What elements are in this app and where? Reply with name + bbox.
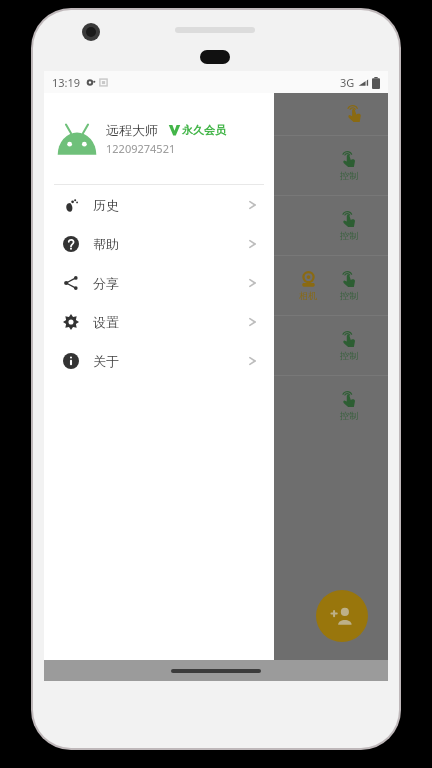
staticText: 历史 bbox=[93, 197, 119, 213]
staticText: 相机 bbox=[299, 290, 317, 301]
staticText: 远程大师 bbox=[106, 122, 158, 138]
button[interactable]: 添加设备 bbox=[316, 590, 368, 642]
button[interactable]: 帮助 bbox=[44, 224, 274, 263]
staticText: 设置 bbox=[93, 314, 119, 330]
button[interactable]: 分享 bbox=[44, 263, 274, 302]
button[interactable]: 关于 bbox=[44, 341, 274, 380]
staticText: 3G bbox=[340, 75, 355, 90]
staticText: 永久会员 bbox=[182, 123, 226, 137]
button[interactable]: 设置 bbox=[44, 302, 274, 341]
button[interactable]: 控制 bbox=[44, 196, 388, 255]
button[interactable]: 控制 bbox=[44, 136, 388, 195]
button[interactable]: 远程大师 bbox=[54, 121, 266, 157]
staticText: 12209274521 bbox=[106, 141, 176, 156]
staticText: 控制 bbox=[340, 350, 358, 361]
button[interactable]: 控制 bbox=[44, 316, 388, 375]
button[interactable]: 相机 bbox=[44, 256, 388, 315]
button[interactable]: 历史 bbox=[44, 185, 274, 224]
staticText: 控制 bbox=[340, 170, 358, 181]
staticText: 13:19 bbox=[52, 75, 81, 90]
staticText: 分享 bbox=[93, 275, 119, 291]
button[interactable]: 控制 bbox=[44, 376, 388, 435]
staticText: 关于 bbox=[93, 353, 119, 369]
staticText: 帮助 bbox=[93, 236, 119, 252]
staticText: 控制 bbox=[340, 230, 358, 241]
staticText: 控制 bbox=[340, 290, 358, 301]
staticText: 控制 bbox=[340, 410, 358, 421]
button[interactable]: 控制 bbox=[346, 105, 364, 123]
